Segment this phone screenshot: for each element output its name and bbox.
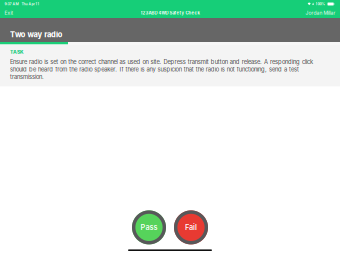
staticText: Exit: [4, 10, 13, 16]
staticText: 123ABD 4WD Safety Check: [140, 10, 199, 16]
staticText: Thu Apr 11: [19, 2, 40, 6]
button[interactable]: Pass: [132, 210, 166, 244]
staticText: Pass: [140, 223, 157, 232]
button[interactable]: Exit: [3, 8, 14, 17]
staticText: Ensure radio is set on the correct chann…: [10, 58, 313, 80]
button[interactable]: Jordan Millar: [304, 8, 336, 17]
staticText: 100%: [315, 2, 325, 6]
staticText: Jordan Millar: [305, 10, 335, 16]
staticText: Two way radio: [10, 30, 63, 39]
button[interactable]: Fail: [174, 210, 208, 244]
staticText: Fail: [185, 223, 197, 232]
staticText: 9:37 AM: [5, 2, 19, 6]
staticText: TASK: [10, 49, 24, 55]
